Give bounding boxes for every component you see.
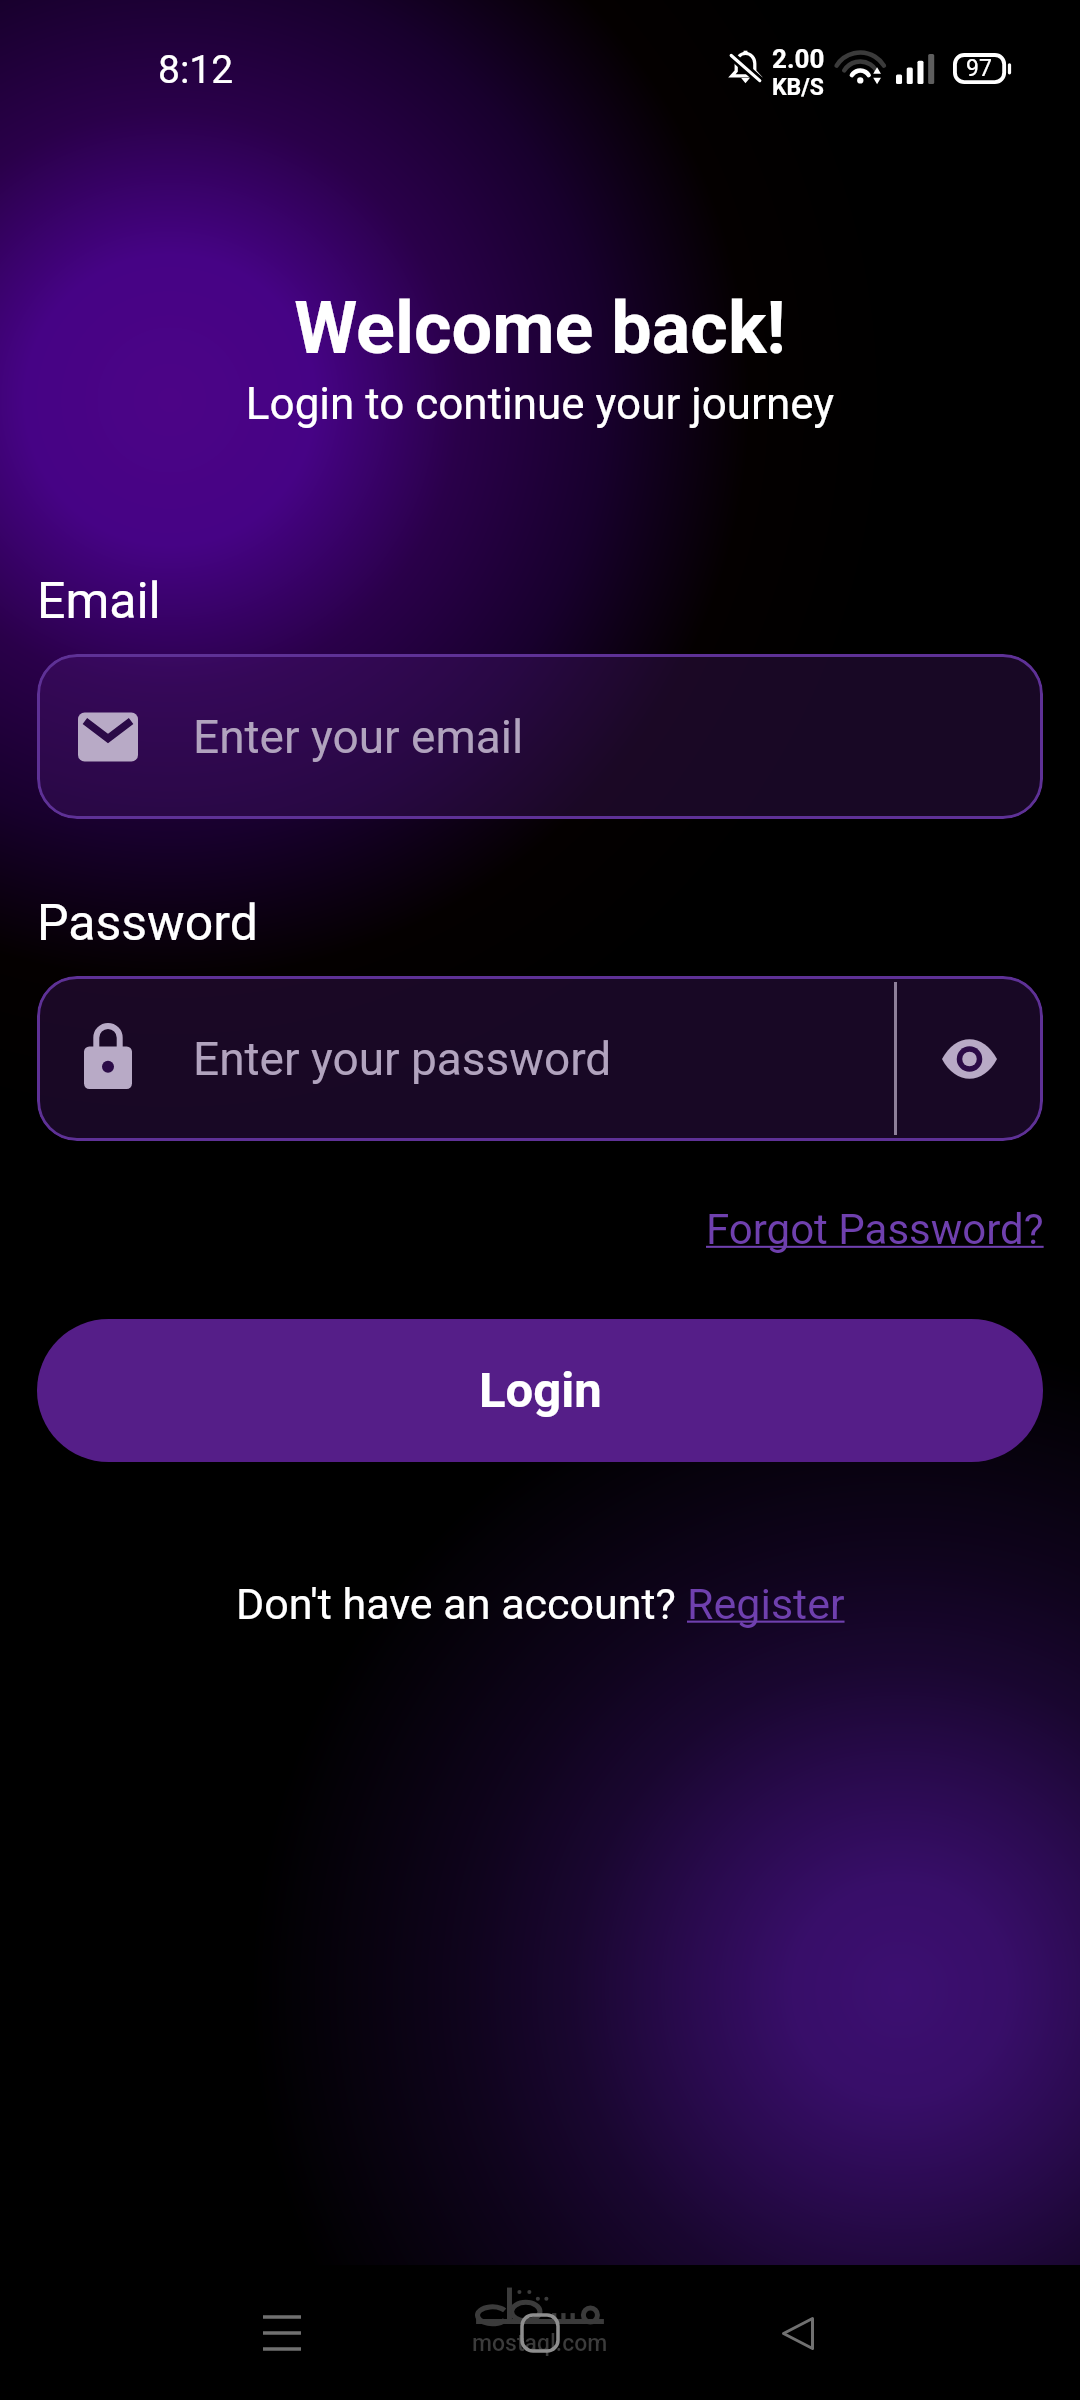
- button[interactable]: Back: [748, 2283, 848, 2383]
- staticText: 8:12: [158, 47, 234, 93]
- staticText: Don't have an account?: [236, 1579, 687, 1629]
- staticText: Email: [37, 572, 161, 631]
- staticText: Login to continue your journey: [0, 378, 1080, 430]
- staticText: Forgot Password?: [706, 1205, 1044, 1254]
- staticText: Enter your password: [193, 1032, 612, 1086]
- staticText: Password: [37, 894, 258, 953]
- button[interactable]: Register: [687, 1579, 845, 1629]
- staticText: Enter your email: [193, 710, 524, 764]
- button[interactable]: Forgot Password?: [706, 1205, 1044, 1254]
- staticText: Login: [479, 1362, 602, 1419]
- staticText: 2.00: [772, 44, 825, 74]
- button[interactable]: Login: [37, 1319, 1043, 1462]
- staticText: 97: [966, 55, 992, 82]
- button[interactable]: Show password: [924, 1014, 1014, 1104]
- staticText: Welcome back!: [0, 286, 1080, 370]
- button[interactable]: Enter your password: [37, 976, 1043, 1141]
- button[interactable]: Home: [490, 2283, 590, 2383]
- button[interactable]: Enter your email: [37, 654, 1043, 819]
- staticText: Register: [687, 1579, 845, 1629]
- button[interactable]: Recents: [232, 2283, 332, 2383]
- staticText: KB/S: [772, 74, 824, 101]
- staticText: mostaql.com: [472, 2330, 608, 2357]
